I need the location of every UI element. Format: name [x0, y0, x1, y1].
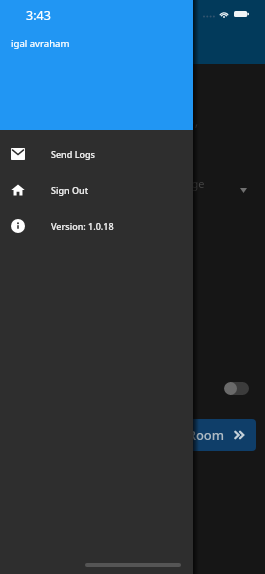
staticText: Version: 1.0.18 — [51, 220, 114, 232]
staticText: Enter Room — [151, 426, 225, 444]
button[interactable]: Version: 1.0.18 — [0, 208, 193, 244]
button[interactable]: Enter Room — [138, 419, 256, 451]
staticText: Hello, — [158, 110, 199, 130]
staticText: 3:43 — [26, 7, 51, 24]
staticText: Sign Out — [51, 184, 89, 196]
staticText: Send Logs — [51, 148, 95, 160]
button[interactable]: Sign Out — [0, 172, 193, 208]
staticText: Language — [153, 176, 205, 191]
button[interactable]: Toggle — [224, 382, 249, 395]
button[interactable]: Send Logs — [0, 136, 193, 172]
staticText: igal avraham — [11, 37, 70, 50]
